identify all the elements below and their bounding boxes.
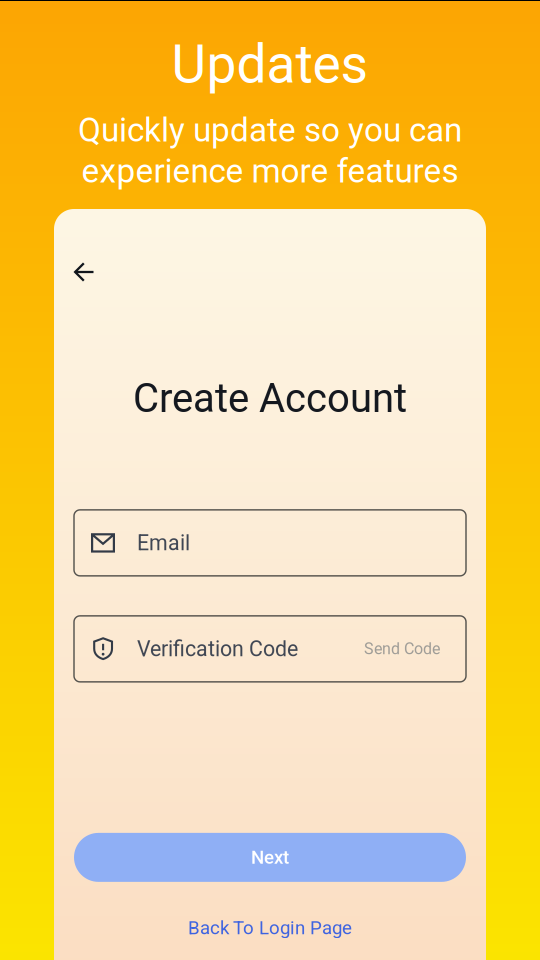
button[interactable]: Back xyxy=(54,209,108,296)
staticText: Create Account xyxy=(133,375,407,422)
button[interactable]: Back To Login Page xyxy=(54,908,486,948)
button[interactable]: Next xyxy=(74,833,466,882)
staticText: Email xyxy=(137,530,190,555)
button[interactable]: Email xyxy=(74,510,466,576)
staticText: Back To Login Page xyxy=(188,917,352,939)
button[interactable]: Verification Code xyxy=(74,616,466,682)
staticText: Verification Code xyxy=(137,636,298,661)
staticText: Next xyxy=(251,846,289,868)
staticText: Send Code xyxy=(364,639,440,658)
staticText: experience more features xyxy=(81,152,458,191)
staticText: Updates xyxy=(171,33,368,95)
staticText: Quickly update so you can xyxy=(78,110,462,150)
button[interactable]: Send Code xyxy=(364,639,440,658)
